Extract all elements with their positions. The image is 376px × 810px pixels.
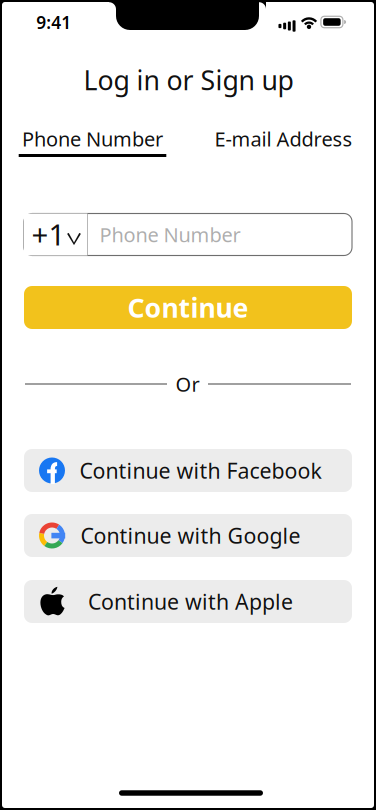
button[interactable]: Phone Number	[19, 123, 166, 165]
staticText: Continue	[127, 290, 248, 325]
staticText: E-mail Address	[214, 125, 352, 152]
staticText: Or	[175, 371, 199, 397]
button[interactable]: Continue with Facebook	[24, 449, 352, 492]
button[interactable]: +1	[24, 213, 87, 255]
button[interactable]: Continue with Google	[24, 514, 352, 557]
staticText: Phone Number	[99, 221, 240, 248]
staticText: Continue with Apple	[88, 587, 293, 616]
button[interactable]: Continue	[24, 286, 352, 329]
staticText: Continue with Facebook	[79, 456, 321, 485]
staticText: +1	[32, 214, 66, 253]
button[interactable]: E-mail Address	[210, 123, 357, 165]
staticText: Continue with Google	[80, 521, 300, 550]
staticText: Phone Number	[22, 125, 163, 152]
staticText: 9:41	[36, 11, 71, 34]
button[interactable]: Continue with Apple	[24, 580, 352, 623]
staticText: Log in or Sign up	[83, 62, 293, 98]
